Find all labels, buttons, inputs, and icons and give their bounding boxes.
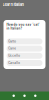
button[interactable]: Uccello — [6, 53, 42, 59]
staticText: Cavallo — [8, 61, 20, 65]
button[interactable]: Profile — [34, 91, 37, 100]
button[interactable]: Cavallo — [6, 60, 42, 66]
staticText: Learn Italian — [2, 2, 23, 7]
staticText: Uccello — [8, 54, 20, 57]
button[interactable]: Learn — [12, 91, 15, 100]
staticText: Gatto — [8, 40, 16, 43]
staticText: Cane — [8, 47, 16, 50]
button[interactable]: Practice — [23, 91, 26, 100]
button[interactable]: Cane — [6, 46, 42, 52]
button[interactable]: Gatto — [6, 38, 42, 44]
staticText: How do you say 'cat' in Italian? — [6, 23, 39, 30]
